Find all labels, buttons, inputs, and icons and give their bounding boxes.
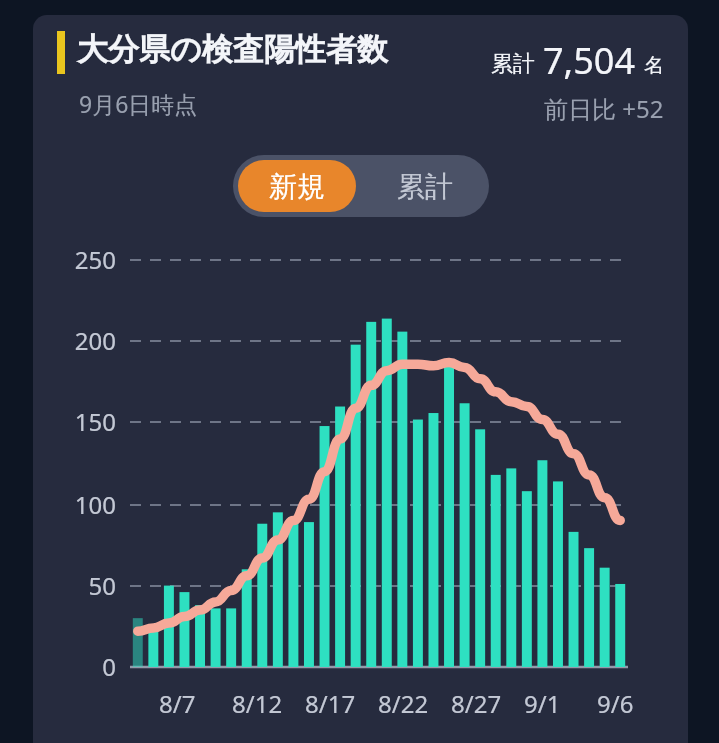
staticText: 新規	[269, 169, 325, 204]
staticText: 150	[38, 405, 116, 438]
staticText: 8/17	[305, 687, 356, 720]
staticText: 名	[644, 53, 664, 78]
staticText: 9/1	[524, 687, 561, 720]
staticText: 8/12	[232, 687, 283, 720]
staticText: 8/7	[159, 687, 196, 720]
staticText: 0	[38, 650, 116, 683]
staticText: 250	[38, 243, 116, 276]
staticText: 前日比 +52	[544, 92, 664, 125]
staticText: 9/6	[597, 687, 634, 720]
staticText: 200	[38, 324, 116, 357]
staticText: 8/27	[451, 687, 502, 720]
staticText: 7,504	[543, 36, 636, 85]
staticText: 大分県の検査陽性者数	[77, 30, 388, 69]
button[interactable]: 累計	[366, 160, 484, 212]
staticText: 9月6日時点	[79, 88, 198, 119]
button[interactable]: 新規	[238, 160, 356, 212]
staticText: 50	[38, 569, 116, 602]
staticText: 100	[38, 488, 116, 521]
staticText: 累計	[491, 50, 535, 78]
staticText: 8/22	[378, 687, 429, 720]
staticText: 累計	[397, 169, 453, 204]
